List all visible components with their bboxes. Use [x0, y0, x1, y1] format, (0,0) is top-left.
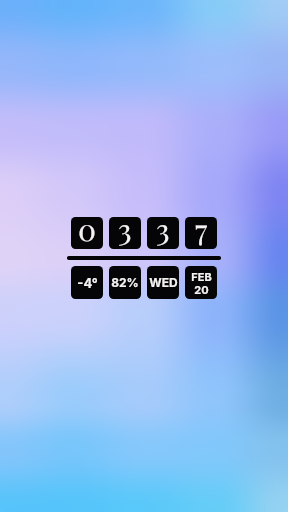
- staticText: 20: [194, 283, 209, 296]
- staticText: 82%: [111, 275, 139, 290]
- staticText: WED: [149, 275, 178, 290]
- button[interactable]: Clock digit 0: [71, 217, 103, 249]
- button[interactable]: Clock digit 3: [109, 217, 141, 249]
- button[interactable]: Wednesday: [147, 266, 179, 299]
- button[interactable]: Clock digit 3: [147, 217, 179, 249]
- button[interactable]: Temperature minus 4 degrees: [71, 266, 103, 299]
- button[interactable]: February 20: [185, 266, 217, 299]
- staticText: FEB: [191, 270, 212, 283]
- button[interactable]: Battery 82 percent: [109, 266, 141, 299]
- button[interactable]: Clock digit 7: [185, 217, 217, 249]
- staticText: -4°: [77, 275, 98, 291]
